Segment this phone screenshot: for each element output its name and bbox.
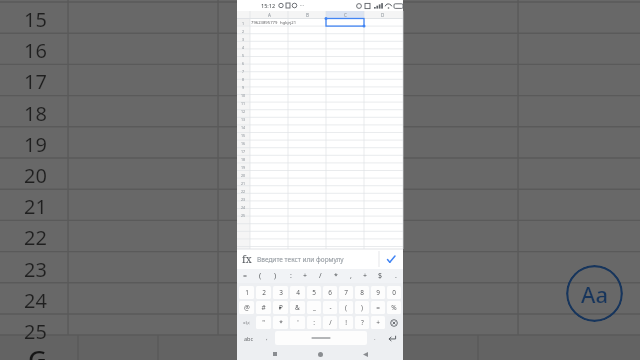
staticText: ! <box>345 318 347 327</box>
button[interactable]: ? <box>355 316 369 329</box>
button[interactable]: 3 <box>273 286 288 299</box>
staticText: . <box>395 271 397 281</box>
button[interactable]: ( <box>253 269 268 283</box>
staticText: 16 <box>24 37 47 63</box>
staticText: , <box>266 334 268 342</box>
staticText: 25 <box>24 318 47 344</box>
button[interactable]: : <box>283 269 298 283</box>
button[interactable]: + <box>371 316 385 329</box>
staticText: " <box>262 318 265 327</box>
button[interactable]: Recents <box>268 348 282 360</box>
button[interactable]: =\< <box>239 316 254 329</box>
button[interactable]: 1 <box>239 286 254 299</box>
button[interactable]: Home <box>313 348 327 360</box>
button[interactable]: / <box>323 316 337 329</box>
button[interactable]: 4 <box>290 286 305 299</box>
button[interactable]: = <box>237 269 253 283</box>
button[interactable]: 5 <box>307 286 321 299</box>
staticText: 1 <box>242 21 245 26</box>
button[interactable]: , <box>343 269 358 283</box>
button[interactable]: ) <box>268 269 283 283</box>
button[interactable]: & <box>290 301 305 314</box>
staticText: * <box>279 318 283 327</box>
staticText: 24 <box>24 287 47 313</box>
staticText: 19 <box>241 165 246 170</box>
staticText: 21 <box>24 193 47 219</box>
staticText: & <box>295 303 300 312</box>
staticText: 2 <box>262 288 266 297</box>
staticText: 3 <box>242 37 245 42</box>
button[interactable]: ₽ <box>273 301 288 314</box>
button[interactable]: * <box>328 269 343 283</box>
button[interactable]: Space <box>275 331 367 345</box>
staticText: A <box>268 12 271 18</box>
staticText: 6 <box>242 61 245 66</box>
staticText: + <box>303 271 308 281</box>
staticText: : <box>313 318 315 327</box>
button[interactable]: ( <box>339 301 353 314</box>
button[interactable]: 2 <box>256 286 271 299</box>
button[interactable]: ' <box>290 316 305 329</box>
staticText: 11 <box>241 101 246 106</box>
staticText: - <box>329 303 332 312</box>
staticText: 15 <box>24 6 47 32</box>
button[interactable]: * <box>273 316 288 329</box>
button[interactable]: Backspace <box>387 316 401 329</box>
button[interactable]: Text formatting <box>566 265 623 322</box>
button[interactable]: $ <box>373 269 388 283</box>
button[interactable]: abc <box>238 331 260 345</box>
button[interactable]: . <box>388 269 403 283</box>
button[interactable]: : <box>307 316 321 329</box>
button[interactable]: 0 <box>387 286 401 299</box>
button[interactable]: % <box>387 301 401 314</box>
button[interactable]: Enter <box>382 331 402 345</box>
staticText: @ <box>244 303 250 312</box>
staticText: ( <box>259 271 262 281</box>
button[interactable]: @ <box>239 301 254 314</box>
staticText: ) <box>274 271 277 281</box>
button[interactable]: + <box>358 269 373 283</box>
button[interactable]: 7 <box>339 286 353 299</box>
staticText: =\< <box>243 320 250 326</box>
button[interactable]: + <box>298 269 313 283</box>
button[interactable]: ) <box>355 301 369 314</box>
staticText: 25 <box>241 213 246 218</box>
staticText: / <box>319 271 322 281</box>
staticText: 13 <box>241 117 246 122</box>
button[interactable]: / <box>313 269 328 283</box>
button[interactable]: Back <box>358 348 372 360</box>
staticText: 6 <box>328 288 332 297</box>
staticText: 20 <box>24 162 47 188</box>
staticText: 21 <box>241 181 246 186</box>
staticText: 15:12 <box>261 2 276 9</box>
staticText: : <box>290 271 292 281</box>
staticText: 2 <box>242 29 245 34</box>
button[interactable]: - <box>323 301 337 314</box>
button[interactable]: 8 <box>355 286 369 299</box>
staticText: + <box>376 318 380 327</box>
button[interactable]: Confirm <box>379 249 403 269</box>
staticText: , <box>350 271 352 281</box>
staticText: 10 <box>241 93 246 98</box>
staticText: 24 <box>241 205 246 210</box>
staticText: 15 <box>241 133 246 138</box>
button[interactable]: Functions <box>237 249 257 269</box>
button[interactable]: 9 <box>371 286 385 299</box>
staticText: 4 <box>296 288 300 297</box>
button[interactable]: Введите текст или формулу <box>257 249 379 269</box>
button[interactable]: . <box>368 331 382 345</box>
button[interactable]: 6 <box>323 286 337 299</box>
button[interactable]: # <box>256 301 271 314</box>
button[interactable]: " <box>256 316 271 329</box>
staticText: ? <box>361 318 364 327</box>
button[interactable]: = <box>371 301 385 314</box>
button[interactable]: _ <box>307 301 321 314</box>
button[interactable]: ! <box>339 316 353 329</box>
staticText: G <box>28 341 47 360</box>
button[interactable]: , <box>260 331 274 345</box>
staticText: 8 <box>242 77 245 82</box>
staticText: 8 <box>360 288 364 297</box>
staticText: * <box>334 271 338 281</box>
staticText: = <box>376 303 380 312</box>
staticText: 23 <box>24 256 47 282</box>
